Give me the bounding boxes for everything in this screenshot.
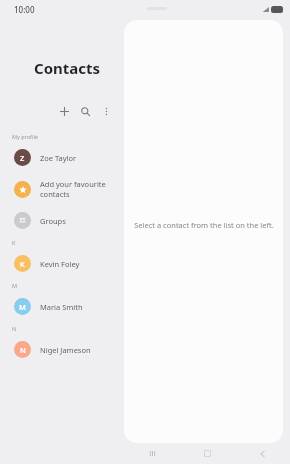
- staticText: K: [20, 259, 25, 269]
- staticText: Kevin Foley: [40, 259, 80, 269]
- button[interactable]: N: [0, 335, 124, 364]
- staticText: K: [12, 239, 16, 246]
- staticText: Select a contact from the list on the le…: [134, 220, 274, 230]
- button[interactable]: Z: [0, 143, 124, 172]
- button[interactable]: Home: [180, 443, 235, 464]
- button[interactable]: M: [0, 292, 124, 321]
- staticText: N: [20, 345, 26, 355]
- staticText: Zoe Taylor: [40, 153, 77, 163]
- button[interactable]: More options: [98, 103, 114, 119]
- staticText: Nigel Jameson: [40, 345, 91, 355]
- staticText: Groups: [40, 216, 66, 226]
- button[interactable]: K: [0, 249, 124, 278]
- staticText: M: [12, 282, 17, 289]
- staticText: M: [19, 302, 26, 312]
- button[interactable]: Search: [77, 103, 93, 119]
- staticText: Contacts: [34, 58, 101, 78]
- button[interactable]: Add your favourite contacts: [0, 172, 124, 206]
- staticText: 10:00: [14, 4, 35, 15]
- button[interactable]: Groups: [0, 206, 124, 235]
- staticText: My profile: [12, 133, 38, 140]
- button[interactable]: Back: [235, 443, 290, 464]
- staticText: Maria Smith: [40, 302, 83, 312]
- staticText: Z: [20, 153, 25, 163]
- button[interactable]: Recents: [124, 443, 180, 464]
- button[interactable]: Add contact: [56, 103, 72, 119]
- staticText: Add your favourite contacts: [40, 179, 106, 199]
- staticText: N: [12, 325, 17, 332]
